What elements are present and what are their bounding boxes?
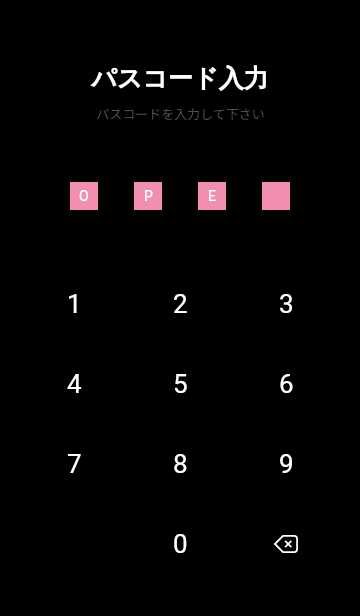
staticText: E (208, 188, 216, 204)
button[interactable]: 4 (21, 344, 127, 424)
button[interactable]: 0 (127, 504, 233, 584)
staticText: 1 (67, 289, 82, 319)
staticText: P (144, 188, 153, 204)
staticText: 2 (173, 289, 188, 319)
button[interactable]: 9 (233, 424, 339, 504)
button[interactable]: 6 (233, 344, 339, 424)
staticText: 7 (67, 449, 82, 479)
button[interactable]: Delete (233, 504, 339, 584)
staticText: 6 (279, 369, 294, 399)
staticText: 0 (173, 529, 188, 559)
staticText: パスコード入力 (91, 63, 269, 94)
button[interactable]: 1 (21, 264, 127, 344)
button[interactable]: 2 (127, 264, 233, 344)
staticText: 8 (173, 449, 188, 479)
staticText: 5 (173, 369, 188, 399)
staticText: 4 (67, 369, 82, 399)
button[interactable]: 8 (127, 424, 233, 504)
staticText: O (79, 188, 89, 204)
button[interactable]: 3 (233, 264, 339, 344)
button[interactable]: 7 (21, 424, 127, 504)
staticText: パスコードを入力して下さい (96, 104, 265, 123)
staticText: 3 (279, 289, 294, 319)
button[interactable]: 5 (127, 344, 233, 424)
staticText: 9 (279, 449, 294, 479)
